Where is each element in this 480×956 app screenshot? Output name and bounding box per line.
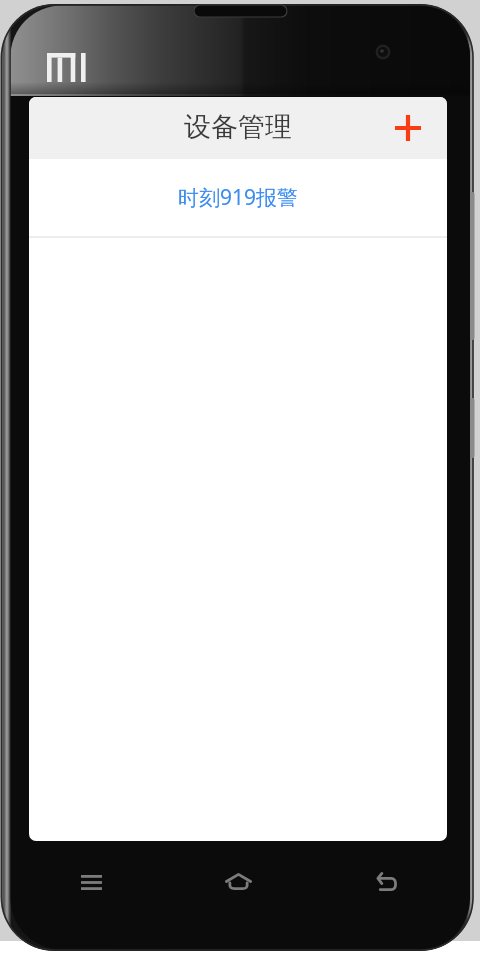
- staticText: 时刻919报警: [178, 183, 299, 212]
- button[interactable]: Back: [361, 856, 411, 906]
- button[interactable]: Menu: [66, 857, 116, 907]
- button[interactable]: Home: [213, 856, 263, 906]
- button[interactable]: 时刻919报警: [29, 159, 447, 236]
- button[interactable]: Add device: [383, 103, 433, 153]
- staticText: 设备管理: [184, 110, 292, 144]
